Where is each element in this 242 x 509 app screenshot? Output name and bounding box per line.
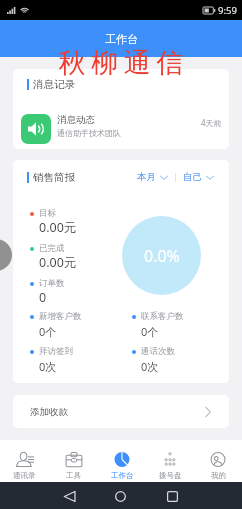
button[interactable]: Floating assistant	[0, 239, 12, 271]
staticText: 自己	[183, 171, 202, 183]
staticText: 消息动态	[57, 114, 95, 126]
button[interactable]: 工具	[49, 440, 98, 482]
staticText: 4天前	[201, 117, 222, 128]
staticText: 0.00元	[39, 254, 77, 271]
button[interactable]: 添加收款	[13, 395, 229, 428]
staticText: 订单数	[39, 278, 65, 289]
staticText: 拜访签到	[39, 346, 73, 357]
button[interactable]: 通讯录	[0, 440, 49, 482]
staticText: 工作台	[111, 471, 134, 480]
staticText: 本月	[137, 171, 156, 183]
staticText: 新增客户数	[39, 311, 82, 322]
staticText: 0个	[141, 324, 159, 339]
staticText: 0	[39, 289, 47, 306]
staticText: 0次	[141, 359, 159, 374]
button[interactable]: 本月	[137, 171, 168, 183]
staticText: 0.0%	[144, 245, 180, 267]
button[interactable]: 我的	[194, 440, 242, 482]
staticText: 通讯录	[13, 471, 36, 480]
staticText: 消息记录	[33, 78, 75, 91]
button[interactable]: Home	[104, 485, 136, 507]
staticText: 通话次数	[141, 346, 175, 357]
staticText: 0次	[39, 359, 57, 374]
button[interactable]: Back	[53, 485, 85, 507]
button[interactable]: 消息动态	[13, 113, 229, 144]
staticText: 添加收款	[30, 406, 68, 418]
staticText: 已完成	[39, 243, 65, 254]
staticText: 拨号盘	[159, 471, 182, 480]
staticText: 联系客户数	[141, 311, 184, 322]
button[interactable]: 自己	[183, 171, 214, 183]
button[interactable]: 拨号盘	[146, 440, 194, 482]
staticText: 0个	[39, 324, 57, 339]
staticText: 工作台	[105, 32, 138, 46]
staticText: 销售简报	[33, 171, 75, 184]
staticText: 工具	[66, 471, 81, 480]
staticText: 0.00元	[39, 219, 77, 236]
staticText: 目标	[39, 208, 56, 219]
button[interactable]: 工作台	[98, 440, 146, 482]
staticText: 9:59	[218, 4, 237, 17]
staticText: 秋柳通信	[56, 46, 186, 80]
staticText: 通信助手技术团队	[57, 128, 121, 138]
staticText: 我的	[211, 471, 226, 480]
button[interactable]: Recents	[156, 485, 188, 507]
